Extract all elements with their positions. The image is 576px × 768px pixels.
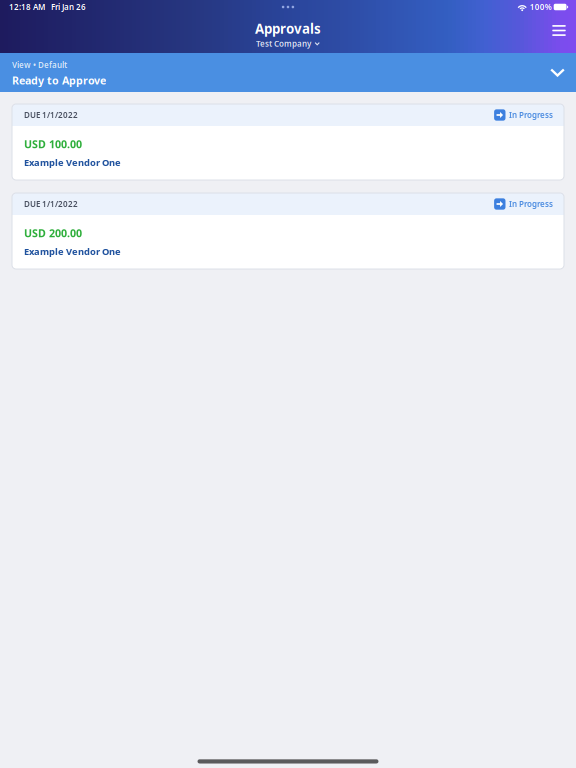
button[interactable]: View • Default [0, 53, 576, 92]
staticText: In Progress [509, 199, 553, 209]
staticText: USD 200.00 [24, 226, 82, 240]
staticText: 12:18 AM Fri Jan 26 [9, 2, 86, 12]
staticText: View • Default [12, 60, 67, 70]
button[interactable]: Menu [542, 12, 576, 49]
button[interactable]: DUE 1/1/2022 [12, 193, 564, 269]
staticText: Example Vendor One [24, 245, 121, 258]
staticText: In Progress [509, 110, 553, 120]
staticText: Approvals [255, 20, 321, 37]
staticText: Ready to Approve [12, 73, 106, 87]
staticText: DUE 1/1/2022 [24, 199, 78, 209]
staticText: Example Vendor One [24, 156, 121, 169]
staticText: USD 100.00 [24, 137, 82, 151]
staticText: DUE 1/1/2022 [24, 110, 78, 120]
staticText: 100% [530, 2, 552, 12]
button[interactable]: DUE 1/1/2022 [12, 104, 564, 180]
staticText: Test Company [256, 38, 311, 49]
